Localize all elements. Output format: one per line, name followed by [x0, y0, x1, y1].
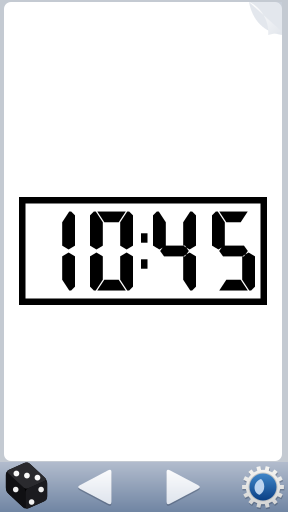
button[interactable]: Previous [64, 463, 124, 511]
button[interactable]: Next [154, 463, 214, 511]
button[interactable]: Settings [237, 463, 288, 511]
button[interactable]: Roll [0, 463, 55, 511]
